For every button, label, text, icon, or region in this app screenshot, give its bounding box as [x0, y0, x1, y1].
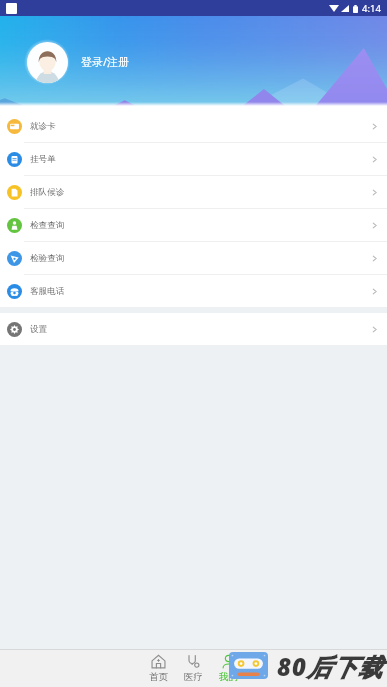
- staticText: 检查查询: [30, 220, 65, 231]
- button[interactable]: 检验查询: [0, 242, 387, 274]
- staticText: 4:14: [362, 2, 381, 15]
- button[interactable]: 设置: [0, 313, 387, 345]
- button[interactable]: 医疗: [176, 654, 211, 683]
- staticText: 检验查询: [30, 253, 65, 264]
- staticText: 首页: [149, 671, 168, 683]
- staticText: 客服电话: [30, 286, 65, 297]
- staticText: 我的: [219, 671, 238, 683]
- staticText: 80后下载: [277, 650, 383, 683]
- staticText: 排队候诊: [30, 187, 65, 198]
- button[interactable]: 我的: [211, 654, 246, 683]
- staticText: 挂号单: [30, 154, 56, 165]
- staticText: 医疗: [184, 671, 203, 683]
- staticText: 登录/注册: [81, 54, 130, 69]
- button[interactable]: 挂号单: [0, 143, 387, 175]
- button[interactable]: 客服电话: [0, 275, 387, 307]
- button[interactable]: 检查查询: [0, 209, 387, 241]
- staticText: 设置: [30, 324, 48, 335]
- button[interactable]: 排队候诊: [0, 176, 387, 208]
- button[interactable]: 首页: [141, 654, 176, 683]
- staticText: 就诊卡: [30, 121, 56, 132]
- button[interactable]: 就诊卡: [0, 110, 387, 142]
